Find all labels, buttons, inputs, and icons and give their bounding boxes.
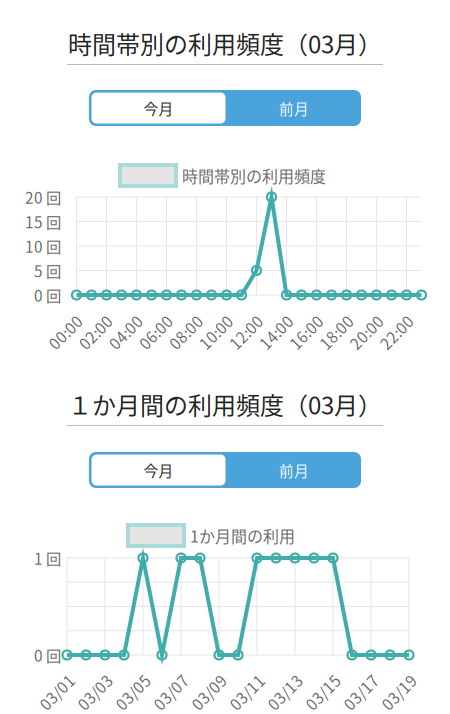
staticText: 08:00: [166, 321, 206, 343]
staticText: 0 回: [34, 284, 61, 306]
staticText: 18:00: [316, 321, 356, 343]
staticText: 03/11: [226, 681, 268, 703]
staticText: 03/17: [340, 681, 382, 703]
staticText: 03/15: [302, 681, 344, 703]
staticText: 15 回: [25, 210, 61, 233]
staticText: 時間帯別の利用頻度（03月）: [68, 26, 382, 60]
button[interactable]: 前月: [227, 454, 360, 485]
staticText: 03/05: [112, 681, 154, 703]
staticText: 02:00: [76, 321, 116, 343]
staticText: 00:00: [45, 321, 85, 343]
button[interactable]: 前月: [227, 92, 360, 123]
staticText: 20 回: [25, 186, 61, 208]
staticText: 20:00: [346, 321, 386, 343]
staticText: 今月: [143, 459, 173, 481]
staticText: １か月間の利用頻度（03月）: [68, 387, 382, 421]
staticText: 03/09: [188, 681, 230, 703]
button[interactable]: 今月: [91, 92, 225, 123]
staticText: 12:00: [226, 321, 266, 343]
staticText: 22:00: [377, 321, 417, 343]
staticText: 10 回: [25, 235, 61, 257]
staticText: 1か月間の利用: [190, 524, 295, 547]
staticText: 前月: [279, 97, 309, 119]
staticText: 03/01: [36, 681, 78, 703]
staticText: 1 回: [34, 547, 61, 569]
staticText: 5 回: [34, 259, 61, 282]
staticText: 03/07: [150, 681, 192, 703]
staticText: 03/19: [378, 681, 420, 703]
staticText: 時間帯別の利用頻度: [182, 164, 326, 187]
staticText: 14:00: [256, 321, 296, 343]
staticText: 10:00: [196, 321, 236, 343]
staticText: 前月: [279, 459, 309, 481]
button[interactable]: 今月: [91, 454, 225, 485]
staticText: 16:00: [286, 321, 326, 343]
staticText: 今月: [143, 97, 173, 119]
staticText: 04:00: [106, 321, 146, 343]
staticText: 03/03: [74, 681, 116, 703]
staticText: 0 回: [34, 644, 61, 666]
staticText: 06:00: [136, 321, 176, 343]
staticText: 03/13: [264, 681, 306, 703]
